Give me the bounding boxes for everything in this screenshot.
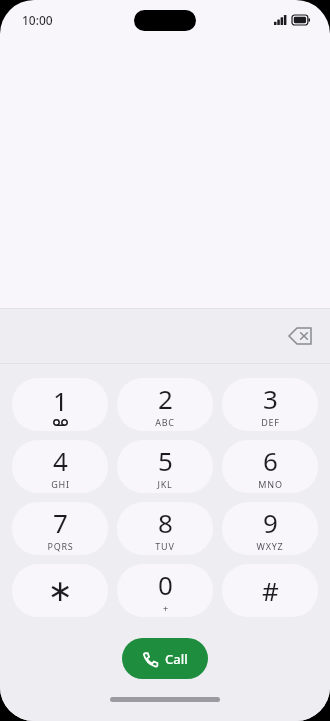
staticText: 9 — [263, 505, 278, 540]
staticText: 6 — [263, 443, 278, 478]
staticText: 8 — [158, 505, 173, 540]
staticText: PQRS — [47, 540, 74, 552]
button[interactable]: ∗ — [12, 564, 108, 617]
button[interactable]: 5 — [117, 440, 213, 493]
button[interactable]: Backspace — [282, 318, 318, 354]
staticText: DEF — [261, 416, 280, 428]
staticText: # — [262, 573, 279, 608]
staticText: 5 — [158, 443, 173, 478]
button[interactable]: 6 — [222, 440, 318, 493]
button[interactable]: 7 — [12, 502, 108, 555]
staticText: TUV — [155, 540, 175, 552]
staticText: GHI — [51, 478, 70, 490]
button[interactable]: 0 — [117, 564, 213, 617]
button[interactable]: 1 — [12, 378, 108, 431]
button[interactable]: Call — [122, 638, 208, 679]
staticText: + — [163, 602, 169, 614]
staticText: WXYZ — [256, 540, 284, 552]
staticText: JKL — [157, 478, 173, 490]
staticText: ABC — [155, 416, 175, 428]
staticText: MNO — [258, 478, 283, 490]
staticText: 1 — [53, 383, 68, 418]
staticText: 3 — [263, 381, 278, 416]
button[interactable]: 4 — [12, 440, 108, 493]
staticText: 0 — [158, 567, 173, 602]
button[interactable]: 8 — [117, 502, 213, 555]
button[interactable]: 3 — [222, 378, 318, 431]
staticText: 7 — [53, 505, 68, 540]
button[interactable]: 9 — [222, 502, 318, 555]
staticText: 2 — [158, 381, 173, 416]
button[interactable]: # — [222, 564, 318, 617]
button[interactable]: 2 — [117, 378, 213, 431]
staticText: ∗ — [47, 573, 73, 608]
staticText: Call — [165, 650, 188, 668]
staticText: 4 — [53, 443, 68, 478]
staticText: 10:00 — [22, 12, 53, 28]
